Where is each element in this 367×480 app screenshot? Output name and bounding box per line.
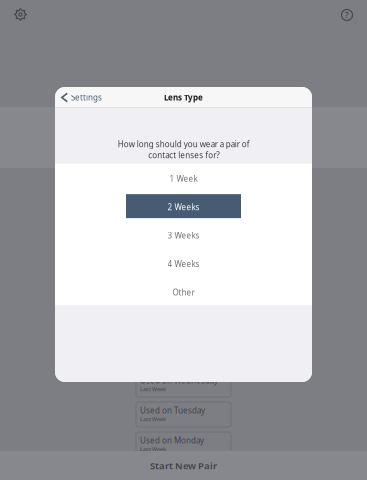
staticText: 4 Weeks — [167, 259, 199, 269]
staticText: Used on Monday — [140, 435, 204, 446]
button[interactable]: 2 Weeks — [55, 192, 312, 220]
button[interactable]: Used on Monday — [136, 432, 231, 457]
staticText: ? — [345, 10, 349, 20]
button[interactable]: Used on Wednesday — [136, 372, 231, 397]
button[interactable]: Start New Pair — [0, 451, 367, 480]
staticText: Last Week — [140, 416, 166, 423]
staticText: Start New Pair — [150, 459, 217, 472]
staticText: Last Week — [140, 386, 166, 393]
staticText: Settings — [71, 92, 102, 103]
button[interactable]: Settings — [7, 2, 33, 26]
staticText: Other — [172, 287, 194, 298]
button[interactable]: 3 Weeks — [55, 220, 312, 249]
staticText: 1 Week — [169, 173, 197, 184]
button[interactable]: Settings — [55, 87, 110, 108]
button[interactable]: Help — [334, 3, 360, 27]
staticText: Used on Tuesday — [140, 405, 205, 416]
staticText: 3 Weeks — [167, 230, 199, 241]
staticText: 2 Weeks — [167, 202, 199, 212]
staticText: Lens Type — [164, 92, 203, 103]
staticText: How long should you wear a pair of conta… — [117, 139, 249, 160]
staticText: Last Week — [140, 446, 166, 453]
staticText: Used on Wednesday — [140, 375, 218, 386]
button[interactable]: 1 Week — [55, 163, 312, 192]
button[interactable]: 4 Weeks — [55, 249, 312, 277]
button[interactable]: Used on Tuesday — [136, 402, 231, 427]
button[interactable]: Other — [55, 277, 312, 305]
